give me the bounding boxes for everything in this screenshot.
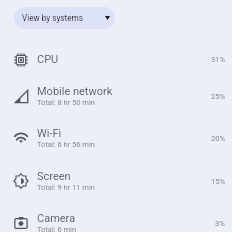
staticText: Camera: [37, 212, 76, 225]
button[interactable]: Camera: [0, 202, 232, 232]
staticText: Screen: [37, 170, 71, 183]
button[interactable]: Screen: [0, 160, 232, 202]
staticText: View by systems: [22, 13, 83, 23]
staticText: CPU: [37, 53, 59, 66]
button[interactable]: View by systems: [14, 7, 115, 29]
staticText: Mobile network: [37, 85, 113, 98]
button[interactable]: CPU: [0, 44, 232, 75]
staticText: 31%: [211, 55, 225, 64]
staticText: 15%: [211, 177, 225, 186]
other: Expand: [105, 16, 110, 20]
staticText: Total: 8 hr 50 min: [37, 98, 95, 107]
button[interactable]: Wi-Fi: [0, 117, 232, 159]
staticText: 25%: [211, 92, 225, 101]
button[interactable]: Mobile network: [0, 75, 232, 117]
staticText: 3%: [215, 219, 225, 228]
staticText: 20%: [211, 134, 225, 143]
staticText: Total: 9 hr 11 min: [37, 183, 95, 192]
staticText: Total: 6 hr 56 min: [37, 140, 95, 149]
staticText: Total: 6 min: [37, 225, 77, 232]
staticText: Wi-Fi: [37, 127, 62, 140]
